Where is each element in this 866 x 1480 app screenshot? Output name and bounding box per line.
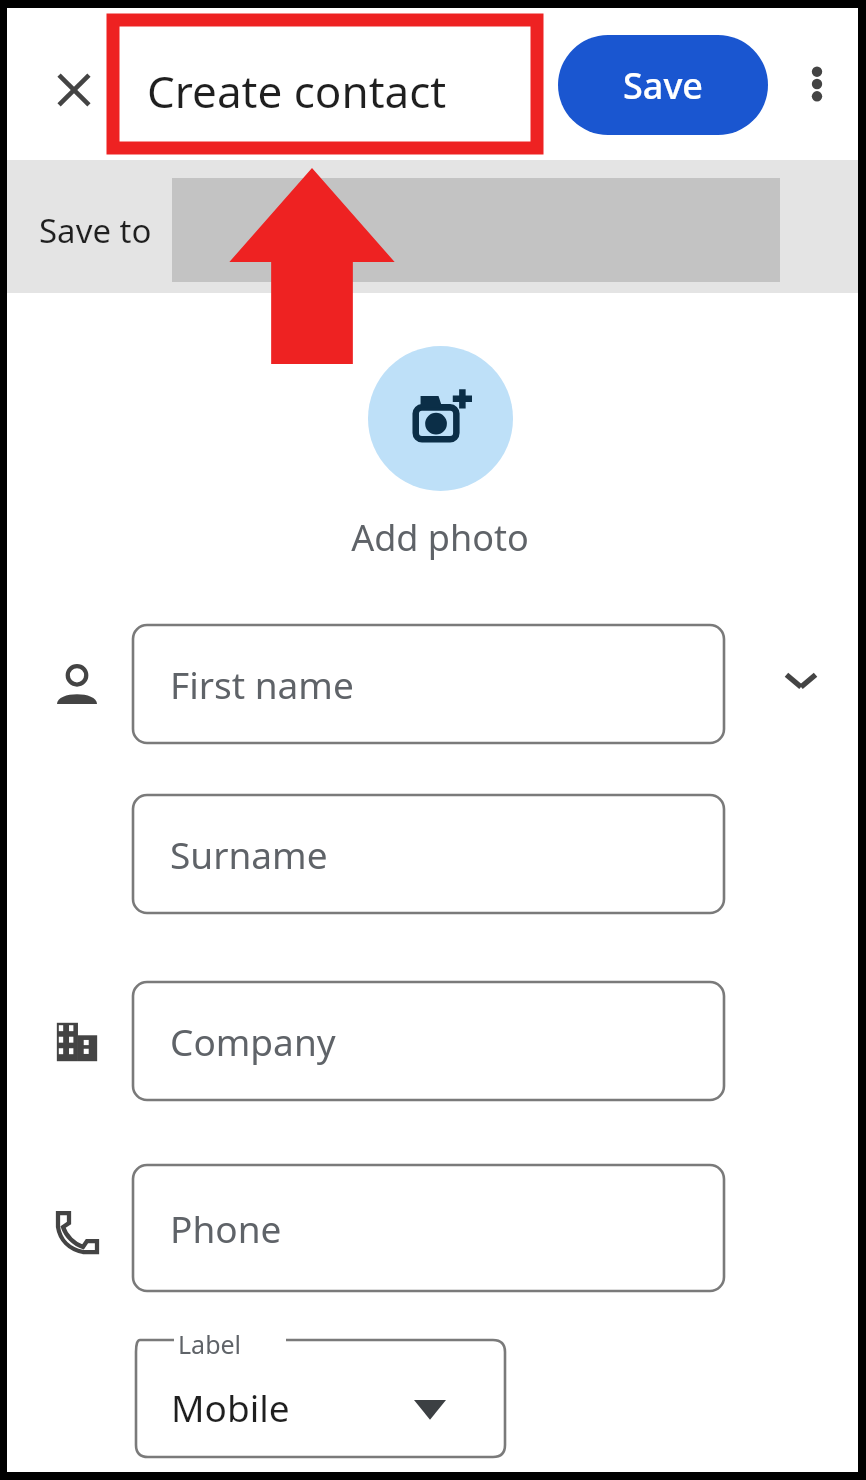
button[interactable]: Close bbox=[30, 46, 118, 134]
staticText: Add photo bbox=[351, 513, 529, 562]
staticText: Save bbox=[623, 61, 704, 110]
other: Company bbox=[33, 998, 121, 1086]
button[interactable]: Add photo bbox=[295, 338, 585, 568]
staticText: Phone bbox=[170, 1203, 282, 1253]
staticText: First name bbox=[170, 659, 354, 709]
button[interactable]: First name bbox=[126, 618, 731, 750]
button[interactable]: Create contact bbox=[147, 56, 447, 126]
button[interactable]: Label bbox=[126, 1330, 511, 1463]
button[interactable]: Surname bbox=[126, 788, 731, 920]
staticText: Create contact bbox=[147, 61, 447, 121]
staticText: Save to bbox=[39, 208, 152, 253]
button[interactable]: Save bbox=[558, 35, 768, 135]
staticText: Company bbox=[170, 1016, 336, 1066]
other: Name bbox=[33, 642, 121, 730]
button[interactable]: More options bbox=[779, 46, 855, 122]
staticText: Surname bbox=[170, 829, 328, 879]
staticText: Label bbox=[178, 1327, 242, 1361]
staticText: Mobile bbox=[171, 1382, 290, 1432]
button[interactable]: Expand name fields bbox=[759, 638, 843, 722]
other: Phone bbox=[33, 1188, 121, 1276]
button[interactable]: Phone bbox=[126, 1158, 731, 1298]
button[interactable]: Save to bbox=[7, 160, 858, 293]
button[interactable]: Company bbox=[126, 975, 731, 1107]
